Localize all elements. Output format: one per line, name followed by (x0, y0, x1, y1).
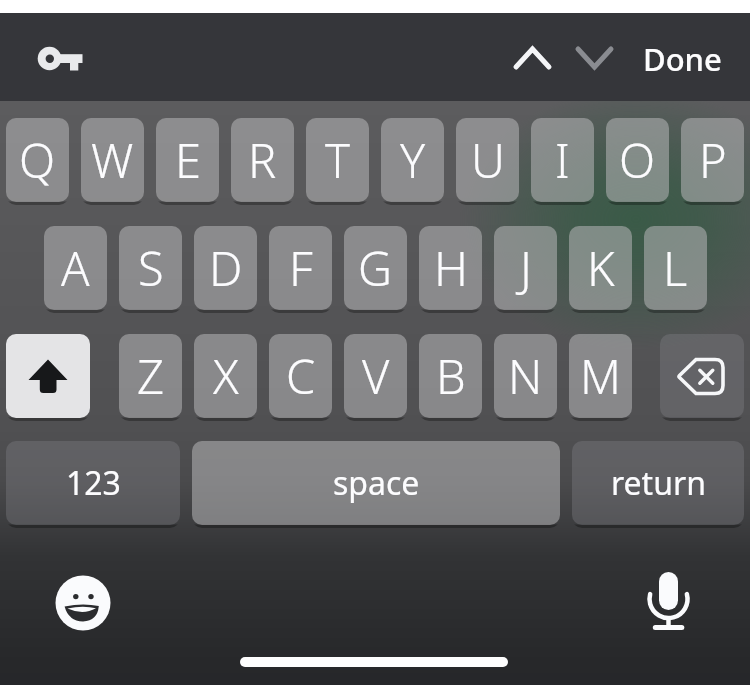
staticText: R (248, 128, 277, 192)
staticText: H (434, 236, 468, 300)
button[interactable] (30, 38, 90, 78)
button[interactable]: A (44, 226, 107, 310)
button[interactable] (6, 334, 90, 418)
button[interactable]: E (156, 118, 219, 202)
staticText: Done (643, 38, 722, 80)
button[interactable] (564, 34, 628, 82)
button[interactable]: Z (119, 334, 182, 418)
staticText: J (520, 236, 532, 300)
staticText: space (333, 461, 420, 505)
button[interactable]: N (494, 334, 557, 418)
button[interactable]: C (269, 334, 332, 418)
staticText: E (175, 128, 201, 192)
button[interactable]: Y (381, 118, 444, 202)
button[interactable]: W (81, 118, 144, 202)
button[interactable]: O (606, 118, 669, 202)
staticText: return (611, 461, 706, 505)
button[interactable]: F (269, 226, 332, 310)
button[interactable]: I (531, 118, 594, 202)
button[interactable]: H (419, 226, 482, 310)
staticText: S (138, 236, 164, 300)
staticText: X (213, 344, 239, 408)
staticText: L (663, 236, 688, 300)
staticText: W (91, 128, 134, 192)
staticText: T (325, 128, 350, 192)
staticText: 123 (66, 461, 121, 505)
staticText: K (587, 236, 615, 300)
staticText: A (61, 236, 90, 300)
button[interactable]: G (344, 226, 407, 310)
button[interactable]: B (419, 334, 482, 418)
staticText: G (358, 236, 393, 300)
staticText: C (286, 344, 316, 408)
button[interactable]: K (569, 226, 632, 310)
button[interactable]: L (644, 226, 707, 310)
button[interactable]: P (681, 118, 744, 202)
button[interactable]: return (572, 441, 744, 525)
button[interactable]: 123 (6, 441, 180, 525)
staticText: V (362, 344, 390, 408)
staticText: M (580, 344, 621, 408)
button[interactable]: D (194, 226, 257, 310)
button[interactable]: R (231, 118, 294, 202)
staticText: P (699, 128, 727, 192)
button[interactable] (48, 568, 118, 638)
staticText: O (619, 128, 656, 192)
button[interactable]: J (494, 226, 557, 310)
button[interactable]: M (569, 334, 632, 418)
button[interactable] (635, 560, 705, 640)
button[interactable]: U (456, 118, 519, 202)
staticText: D (209, 236, 243, 300)
button[interactable]: T (306, 118, 369, 202)
button[interactable]: Q (6, 118, 69, 202)
button[interactable]: X (194, 334, 257, 418)
staticText: F (289, 236, 313, 300)
button[interactable]: space (192, 441, 560, 525)
staticText: Y (400, 128, 426, 192)
staticText: Z (137, 344, 165, 408)
staticText: B (436, 344, 466, 408)
button[interactable] (660, 334, 744, 418)
staticText: N (508, 344, 543, 408)
button[interactable]: V (344, 334, 407, 418)
staticText: U (471, 128, 505, 192)
staticText: I (555, 128, 570, 192)
button[interactable] (500, 34, 564, 82)
button[interactable]: Done (629, 34, 735, 84)
button[interactable]: S (119, 226, 182, 310)
staticText: Q (19, 128, 56, 192)
